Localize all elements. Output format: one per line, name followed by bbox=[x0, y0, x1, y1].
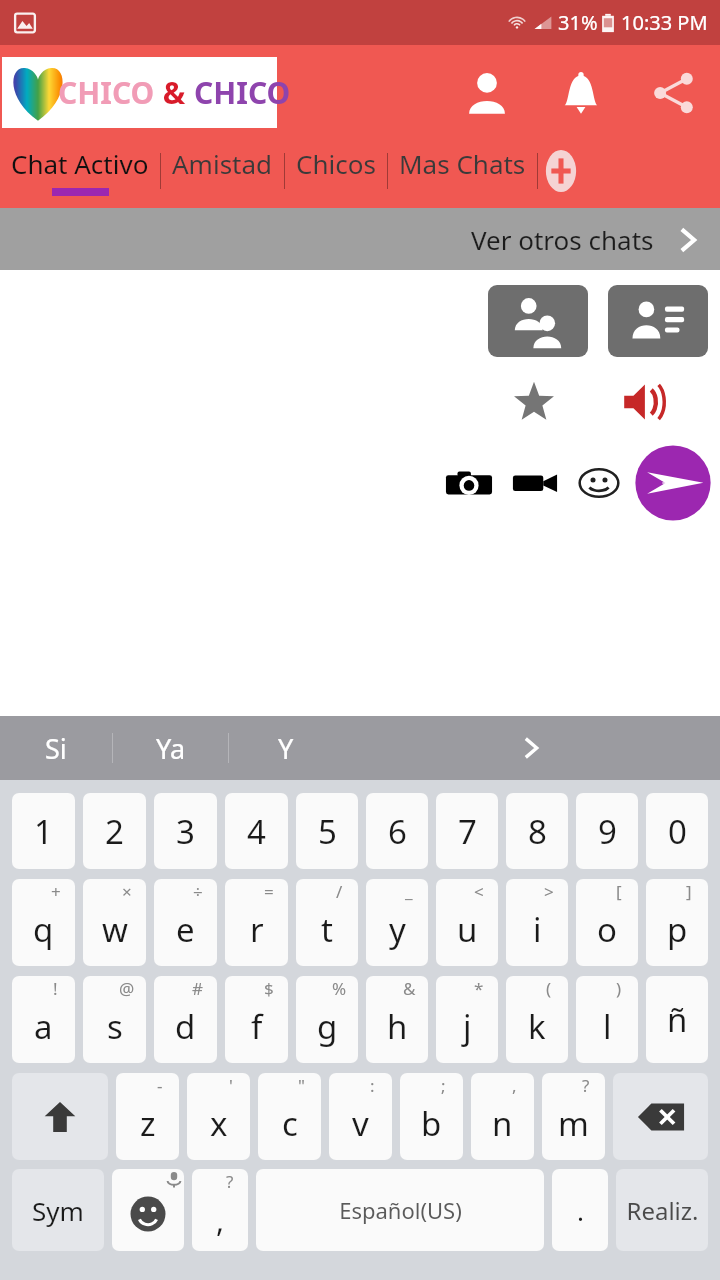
button[interactable]: Emoji bbox=[570, 468, 628, 498]
button[interactable]: Amistad bbox=[161, 146, 284, 196]
staticText: ; bbox=[441, 1074, 446, 1097]
staticText: i bbox=[533, 907, 542, 952]
button[interactable]: Emoji and voice bbox=[112, 1169, 184, 1251]
button[interactable]: < bbox=[436, 879, 498, 966]
staticText: s bbox=[107, 1004, 123, 1049]
button[interactable]: * bbox=[436, 976, 498, 1063]
staticText: ñ bbox=[667, 997, 688, 1042]
button[interactable]: - bbox=[116, 1073, 179, 1160]
button[interactable]: Sound bbox=[620, 378, 668, 426]
button[interactable]: Video bbox=[506, 468, 564, 498]
button[interactable]: Chico & Chico logo bbox=[2, 57, 277, 128]
button[interactable]: 7 bbox=[436, 793, 498, 869]
staticText: ( bbox=[546, 977, 552, 1000]
button[interactable]: # bbox=[154, 976, 217, 1063]
button[interactable]: ? bbox=[542, 1073, 605, 1160]
staticText: @ bbox=[119, 977, 135, 1000]
staticText: u bbox=[457, 907, 478, 952]
staticText: Mas Chats bbox=[399, 146, 526, 181]
button[interactable]: + bbox=[12, 879, 75, 966]
button[interactable]: Chicos bbox=[285, 146, 387, 196]
staticText: Si bbox=[45, 730, 67, 767]
button[interactable]: Realiz. bbox=[616, 1169, 708, 1251]
button[interactable]: Y bbox=[229, 716, 342, 780]
button[interactable]: Chat Activo bbox=[0, 146, 160, 196]
button[interactable]: 6 bbox=[366, 793, 428, 869]
button[interactable]: Ya bbox=[113, 716, 228, 780]
button[interactable]: Español(US) bbox=[256, 1169, 544, 1251]
staticText: & bbox=[403, 977, 416, 1000]
button[interactable]: _ bbox=[366, 879, 428, 966]
button[interactable]: ñ bbox=[646, 976, 708, 1063]
staticText: 31% bbox=[558, 9, 598, 36]
button[interactable]: ; bbox=[400, 1073, 463, 1160]
staticText: ? bbox=[226, 1170, 234, 1193]
button[interactable]: & bbox=[366, 976, 428, 1063]
button[interactable]: = bbox=[225, 879, 288, 966]
staticText: [ bbox=[616, 880, 622, 903]
button[interactable]: ) bbox=[576, 976, 638, 1063]
button[interactable]: Group members bbox=[488, 285, 588, 357]
staticText: y bbox=[389, 907, 406, 952]
button[interactable]: Ver otros chats bbox=[0, 208, 720, 270]
staticText: Ya bbox=[156, 730, 186, 767]
staticText: ! bbox=[53, 977, 58, 1000]
button[interactable]: × bbox=[83, 879, 146, 966]
button[interactable]: 3 bbox=[154, 793, 217, 869]
button[interactable]: ] bbox=[646, 879, 708, 966]
staticText: b bbox=[421, 1101, 442, 1146]
button[interactable]: Favorite bbox=[510, 378, 558, 426]
button[interactable]: " bbox=[258, 1073, 321, 1160]
staticText: < bbox=[474, 880, 484, 903]
button[interactable]: 5 bbox=[296, 793, 358, 869]
button[interactable]: Sym bbox=[12, 1169, 104, 1251]
button[interactable]: Send bbox=[634, 468, 712, 498]
button[interactable]: Contact details bbox=[608, 285, 708, 357]
button[interactable]: Share bbox=[644, 64, 702, 122]
button[interactable]: : bbox=[329, 1073, 392, 1160]
button[interactable]: > bbox=[506, 879, 568, 966]
button[interactable]: . bbox=[552, 1169, 608, 1251]
staticText: r bbox=[250, 907, 264, 952]
button[interactable]: $ bbox=[225, 976, 288, 1063]
button[interactable]: Camera bbox=[440, 468, 498, 498]
button[interactable]: 2 bbox=[83, 793, 146, 869]
button[interactable]: ( bbox=[506, 976, 568, 1063]
button[interactable]: , bbox=[471, 1073, 534, 1160]
staticText: k bbox=[528, 1004, 546, 1049]
button[interactable]: ÷ bbox=[154, 879, 217, 966]
staticText: h bbox=[387, 1004, 408, 1049]
staticText: Chat Activo bbox=[11, 146, 149, 181]
button[interactable]: 8 bbox=[506, 793, 568, 869]
button[interactable]: 4 bbox=[225, 793, 288, 869]
button[interactable]: [ bbox=[576, 879, 638, 966]
staticText: ? bbox=[582, 1074, 590, 1097]
button[interactable]: Shift bbox=[12, 1073, 108, 1160]
button[interactable]: Si bbox=[0, 716, 112, 780]
staticText: : bbox=[370, 1074, 375, 1097]
button[interactable]: More suggestions bbox=[342, 716, 720, 780]
button[interactable]: ' bbox=[187, 1073, 250, 1160]
button[interactable]: % bbox=[296, 976, 358, 1063]
button[interactable]: @ bbox=[83, 976, 146, 1063]
button[interactable]: Profile bbox=[458, 64, 516, 122]
staticText: ] bbox=[686, 880, 692, 903]
staticText: $ bbox=[264, 977, 274, 1000]
button[interactable]: 1 bbox=[12, 793, 75, 869]
button[interactable]: ! bbox=[12, 976, 75, 1063]
button[interactable]: 9 bbox=[576, 793, 638, 869]
staticText: × bbox=[122, 880, 132, 903]
staticText: 4 bbox=[247, 809, 266, 854]
button[interactable]: Notifications bbox=[552, 64, 610, 122]
staticText: ÷ bbox=[193, 880, 203, 903]
button[interactable]: Mas Chats bbox=[388, 146, 537, 196]
staticText: 2 bbox=[105, 809, 124, 854]
staticText: g bbox=[317, 1004, 338, 1049]
button[interactable]: ? bbox=[192, 1169, 248, 1251]
button[interactable]: 0 bbox=[646, 793, 708, 869]
button[interactable]: / bbox=[296, 879, 358, 966]
staticText: 6 bbox=[388, 809, 407, 854]
staticText: % bbox=[332, 977, 347, 1000]
button[interactable]: Add chat bbox=[538, 148, 584, 194]
button[interactable]: Backspace bbox=[613, 1073, 708, 1160]
